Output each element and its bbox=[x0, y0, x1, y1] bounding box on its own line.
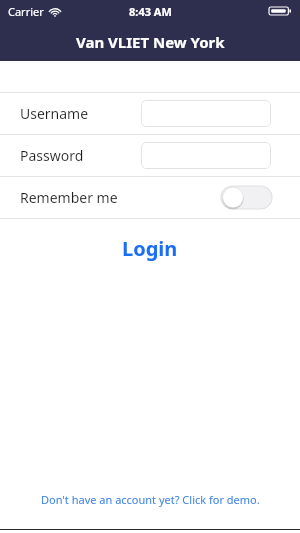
button[interactable]: Password bbox=[0, 135, 300, 176]
button[interactable]: Don't have an account yet? Click for dem… bbox=[0, 487, 300, 511]
staticText: Don't have an account yet? Click for dem… bbox=[41, 492, 260, 507]
staticText: Username bbox=[20, 104, 89, 123]
button[interactable]: Login bbox=[0, 219, 300, 277]
staticText: Remember me bbox=[20, 188, 118, 207]
staticText: Carrier bbox=[8, 4, 44, 19]
button[interactable]: Remember me bbox=[0, 177, 300, 218]
staticText: 8:43 AM bbox=[129, 4, 172, 19]
staticText: Login bbox=[122, 235, 178, 262]
staticText: Password bbox=[20, 146, 84, 165]
button[interactable]: Remember me toggle bbox=[221, 186, 272, 209]
button[interactable]: Username bbox=[0, 93, 300, 134]
staticText: Van VLIET New York bbox=[76, 32, 225, 52]
